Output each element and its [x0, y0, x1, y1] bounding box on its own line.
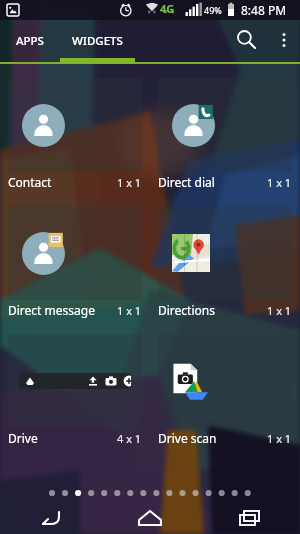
button[interactable]: Directions [150, 192, 300, 320]
staticText: 1 x 1 [267, 175, 292, 190]
staticText: 1 x 1 [117, 303, 142, 318]
button[interactable]: More options [268, 24, 300, 56]
button[interactable]: Direct message [0, 192, 150, 320]
button[interactable]: WIDGETS [59, 20, 135, 64]
button[interactable]: APPS [0, 20, 59, 64]
staticText: Direct message [8, 302, 95, 318]
button[interactable]: Back [0, 502, 100, 534]
staticText: 4 x 1 [117, 431, 142, 446]
staticText: Drive scan [158, 430, 217, 446]
staticText: Drive [8, 430, 38, 446]
staticText: Contact [8, 174, 52, 190]
button[interactable]: Home [100, 502, 200, 534]
staticText: 4G [160, 1, 175, 16]
staticText: WIDGETS [72, 33, 123, 49]
staticText: Direct dial [158, 174, 215, 190]
button[interactable]: Drive scan [150, 320, 300, 448]
button[interactable]: Recent apps [200, 502, 300, 534]
button[interactable]: Drive [0, 320, 150, 448]
button[interactable]: Contact [0, 64, 150, 192]
staticText: Directions [158, 302, 215, 318]
button[interactable]: Search [226, 19, 268, 61]
staticText: 1 x 1 [267, 431, 292, 446]
staticText: 8:48 PM [241, 2, 287, 18]
staticText: APPS [16, 33, 44, 49]
staticText: 49% [204, 4, 222, 16]
staticText: 1 x 1 [267, 303, 292, 318]
button[interactable]: Direct dial [150, 64, 300, 192]
staticText: 1 x 1 [117, 175, 142, 190]
